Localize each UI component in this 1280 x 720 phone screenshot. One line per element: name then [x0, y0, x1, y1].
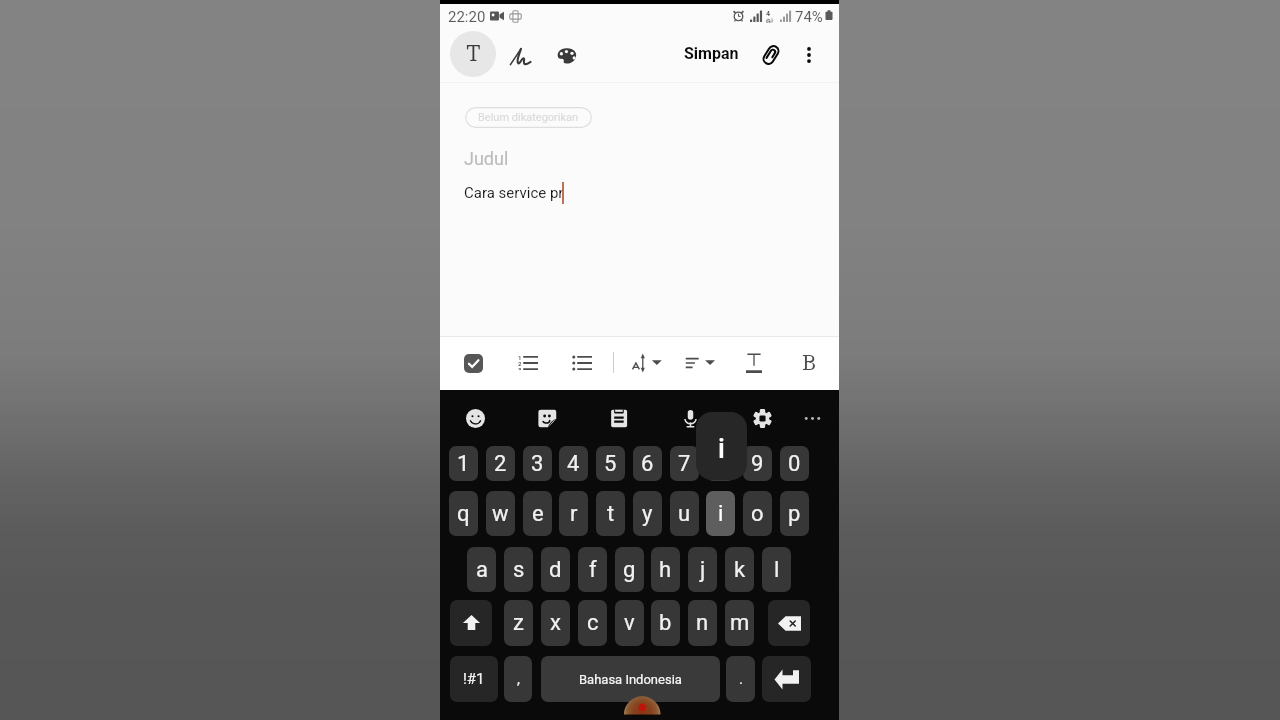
button[interactable]: 8 [706, 446, 735, 481]
button[interactable]: d [541, 547, 570, 592]
button[interactable]: Text alignment [682, 345, 726, 381]
staticText: 1 [457, 451, 470, 477]
staticText: 2 [518, 360, 522, 366]
button[interactable]: s [504, 547, 533, 592]
staticText: 3 [518, 366, 522, 370]
button[interactable]: e [523, 491, 552, 536]
button[interactable]: m [725, 600, 754, 646]
staticText: h [659, 557, 672, 583]
button[interactable]: Font size [628, 345, 672, 381]
button[interactable]: 4 [559, 446, 588, 481]
staticText: p [788, 501, 801, 527]
button[interactable]: w [486, 491, 515, 536]
staticText: d [549, 557, 562, 583]
staticText: 7 [678, 451, 691, 477]
staticText: c [587, 610, 599, 636]
staticText: T [466, 41, 481, 67]
button[interactable]: . [726, 656, 755, 702]
button[interactable]: Shift [450, 600, 492, 646]
staticText: . [739, 670, 743, 688]
button[interactable]: r [559, 491, 588, 536]
staticText: k [734, 557, 746, 583]
button[interactable]: Enter [762, 656, 811, 702]
staticText: Simpan [684, 44, 739, 63]
staticText: 74% [795, 8, 823, 26]
staticText: Bahasa Indonesia [579, 672, 682, 687]
staticText: u [678, 501, 691, 527]
button[interactable]: B [791, 345, 827, 381]
button[interactable]: More options [791, 37, 827, 73]
button[interactable]: 3 [523, 446, 552, 481]
button[interactable]: 6 [633, 446, 662, 481]
button[interactable]: q [449, 491, 478, 536]
button[interactable]: Checklist [455, 345, 491, 381]
staticText: 0 [788, 451, 801, 477]
button[interactable]: 0 [780, 446, 809, 481]
staticText: i [718, 501, 724, 527]
button[interactable]: u [670, 491, 699, 536]
button[interactable]: f [578, 547, 607, 592]
staticText: j [700, 557, 706, 583]
button[interactable]: , [504, 656, 532, 702]
staticText: 3 [531, 451, 544, 477]
staticText: n [696, 610, 709, 636]
button[interactable]: g [615, 547, 644, 592]
staticText: s [513, 557, 525, 583]
button[interactable]: o [743, 491, 772, 536]
button[interactable]: Bahasa Indonesia [541, 656, 720, 702]
button[interactable]: a [467, 547, 496, 592]
button[interactable]: 5 [596, 446, 625, 481]
staticText: 8 [714, 451, 727, 477]
button[interactable]: h [651, 547, 680, 592]
staticText: m [730, 610, 750, 636]
staticText: x [550, 610, 561, 636]
button[interactable]: x [541, 600, 570, 646]
button[interactable]: Pen mode [502, 38, 538, 74]
staticText: 9 [751, 451, 764, 477]
staticText: a [476, 557, 488, 583]
button[interactable]: b [651, 600, 680, 646]
button[interactable]: c [578, 600, 607, 646]
staticText: !#1 [463, 670, 485, 688]
button[interactable]: Bulleted list [564, 345, 600, 381]
button[interactable]: p [780, 491, 809, 536]
button[interactable]: Clipboard [602, 401, 636, 435]
button[interactable]: l [762, 547, 791, 592]
button[interactable]: Numbered list [510, 345, 546, 381]
staticText: i [718, 433, 725, 465]
staticText: e [532, 501, 544, 527]
button[interactable]: Keyboard settings [745, 401, 779, 435]
button[interactable]: 1 [449, 446, 478, 481]
staticText: r [570, 501, 578, 527]
button[interactable]: Text style [736, 345, 772, 381]
button[interactable]: 2 [486, 446, 515, 481]
button[interactable]: Emoji [458, 401, 492, 435]
button[interactable]: Palette [549, 38, 585, 74]
staticText: t [607, 501, 615, 527]
button[interactable]: Text mode [450, 31, 496, 77]
button[interactable]: Backspace [768, 600, 810, 646]
button[interactable]: Stickers [530, 401, 564, 435]
button[interactable]: 9 [743, 446, 772, 481]
button[interactable]: v [615, 600, 644, 646]
button[interactable]: j [688, 547, 717, 592]
staticText: 4 [567, 451, 580, 477]
button[interactable]: k [725, 547, 754, 592]
button[interactable]: More [795, 401, 829, 435]
button[interactable]: !#1 [450, 656, 498, 702]
button[interactable]: n [688, 600, 717, 646]
staticText: l [774, 557, 780, 583]
button[interactable]: Voice input [673, 401, 707, 435]
button[interactable]: y [633, 491, 662, 536]
button[interactable]: Belum dikategorikan [465, 107, 592, 128]
button[interactable]: Attach file [753, 37, 789, 73]
button[interactable]: z [504, 600, 533, 646]
staticText: o [751, 501, 764, 527]
staticText: 6 [641, 451, 654, 477]
button[interactable]: t [596, 491, 625, 536]
button[interactable]: i [706, 491, 735, 536]
staticText: 22:20 [448, 8, 486, 26]
button[interactable]: Simpan [676, 40, 747, 67]
staticText: f [589, 557, 597, 583]
button[interactable]: 7 [670, 446, 699, 481]
